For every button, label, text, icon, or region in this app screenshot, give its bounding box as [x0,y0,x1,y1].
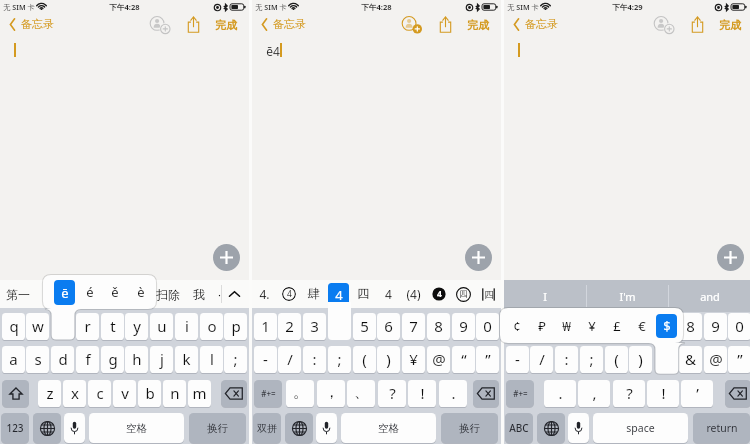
button[interactable]: 备忘录 [509,14,564,34]
button[interactable]: 2 [278,313,301,340]
button[interactable]: I [504,280,586,312]
button[interactable]: 备忘录 [5,14,60,34]
button[interactable]: Share [435,12,456,37]
button[interactable]: 四 [451,280,476,308]
button[interactable]: - [506,346,529,373]
button[interactable]: ! [408,380,436,407]
button[interactable]: (4) [401,280,426,308]
button[interactable]: w [26,313,49,340]
button[interactable]: 8 [427,313,450,340]
button[interactable]: I'm [587,280,668,312]
button[interactable]: 0 [728,313,750,340]
button[interactable]: ¥ [402,346,425,373]
button[interactable]: 我 [187,280,210,308]
button[interactable] [285,413,313,443]
button[interactable]: ; [580,346,603,373]
button[interactable]: g [101,346,124,373]
button[interactable]: 扫除 [152,280,183,308]
button[interactable]: 4. [252,280,276,308]
button[interactable]: 肆 [301,280,326,308]
button[interactable]: . [544,380,576,407]
button[interactable]: 1 [254,313,277,340]
button[interactable]: z [38,380,61,407]
button[interactable]: / [278,346,301,373]
button[interactable] [33,413,61,443]
button[interactable]: and [669,280,750,312]
button[interactable]: & [679,346,702,373]
button[interactable]: Add people [145,12,174,37]
button[interactable]: 0 [476,313,499,340]
button[interactable]: ? [378,380,406,407]
button[interactable]: è [128,275,154,309]
button[interactable]: ē [54,280,75,305]
button[interactable]: ， [317,380,345,407]
button[interactable]: x [63,380,86,407]
button[interactable]: 双拼 [253,413,281,443]
button[interactable]: 4 [376,280,401,308]
button[interactable] [473,380,499,407]
button[interactable]: t [101,313,124,340]
button[interactable]: 、 [347,380,375,407]
button[interactable]: #+= [506,380,534,407]
button[interactable] [221,380,247,407]
button[interactable]: #+= [254,380,282,407]
button[interactable]: Share [687,12,708,37]
button[interactable]: ; [328,346,351,373]
button[interactable]: ’ [681,380,713,407]
button[interactable]: 3 [555,313,578,340]
button[interactable] [316,413,337,443]
button[interactable]: ¢ [504,308,529,343]
button[interactable]: Share [183,12,204,37]
button[interactable] [568,413,589,443]
button[interactable]: r [76,313,99,340]
button[interactable]: ₽ [529,308,554,343]
button[interactable]: 2 [530,313,553,340]
button[interactable]: - [254,346,277,373]
button[interactable]: / [530,346,553,373]
button[interactable] [64,413,85,443]
button[interactable]: ) [629,346,652,373]
button[interactable]: q [2,313,25,340]
button[interactable]: ” [476,346,499,373]
button[interactable]: d [51,346,74,373]
button[interactable]: 4 [328,283,349,306]
button[interactable]: 空格 [89,413,184,443]
button[interactable]: ( [353,346,376,373]
button[interactable]: i [175,313,198,340]
button[interactable]: u [150,313,173,340]
button[interactable]: : [555,346,578,373]
button[interactable]: Add [213,244,240,271]
button[interactable]: ( [605,346,628,373]
button[interactable]: Add people [397,12,426,37]
button[interactable]: b [138,380,161,407]
button[interactable]: 3 [303,313,326,340]
button[interactable]: f [76,346,99,373]
button[interactable]: v [113,380,136,407]
button[interactable]: y [125,313,148,340]
button[interactable]: 6 [377,313,400,340]
button[interactable]: $ [656,314,677,338]
button[interactable] [2,380,29,407]
button[interactable]: 7 [402,313,425,340]
button[interactable]: 换行 [189,413,246,443]
button[interactable]: 5 [353,313,376,340]
button[interactable]: ě [102,275,128,309]
button[interactable]: ; [224,346,247,373]
button[interactable]: € [629,308,654,343]
button[interactable]: 4 [276,280,301,308]
button[interactable]: p [224,313,247,340]
button[interactable]: 6 [629,313,652,340]
button[interactable]: space [593,413,688,443]
button[interactable]: s [26,346,49,373]
button[interactable]: Add people [649,12,678,37]
button[interactable]: 换行 [441,413,498,443]
button[interactable]: ¥ [579,308,604,343]
button[interactable]: 123 [1,413,29,443]
button[interactable]: k [175,346,198,373]
button[interactable]: ₩ [554,308,579,343]
button[interactable]: “ [452,346,475,373]
button[interactable]: : [303,346,326,373]
button[interactable]: 1 [506,313,529,340]
button[interactable]: 5 [605,313,628,340]
button[interactable]: 完成 [463,14,493,35]
